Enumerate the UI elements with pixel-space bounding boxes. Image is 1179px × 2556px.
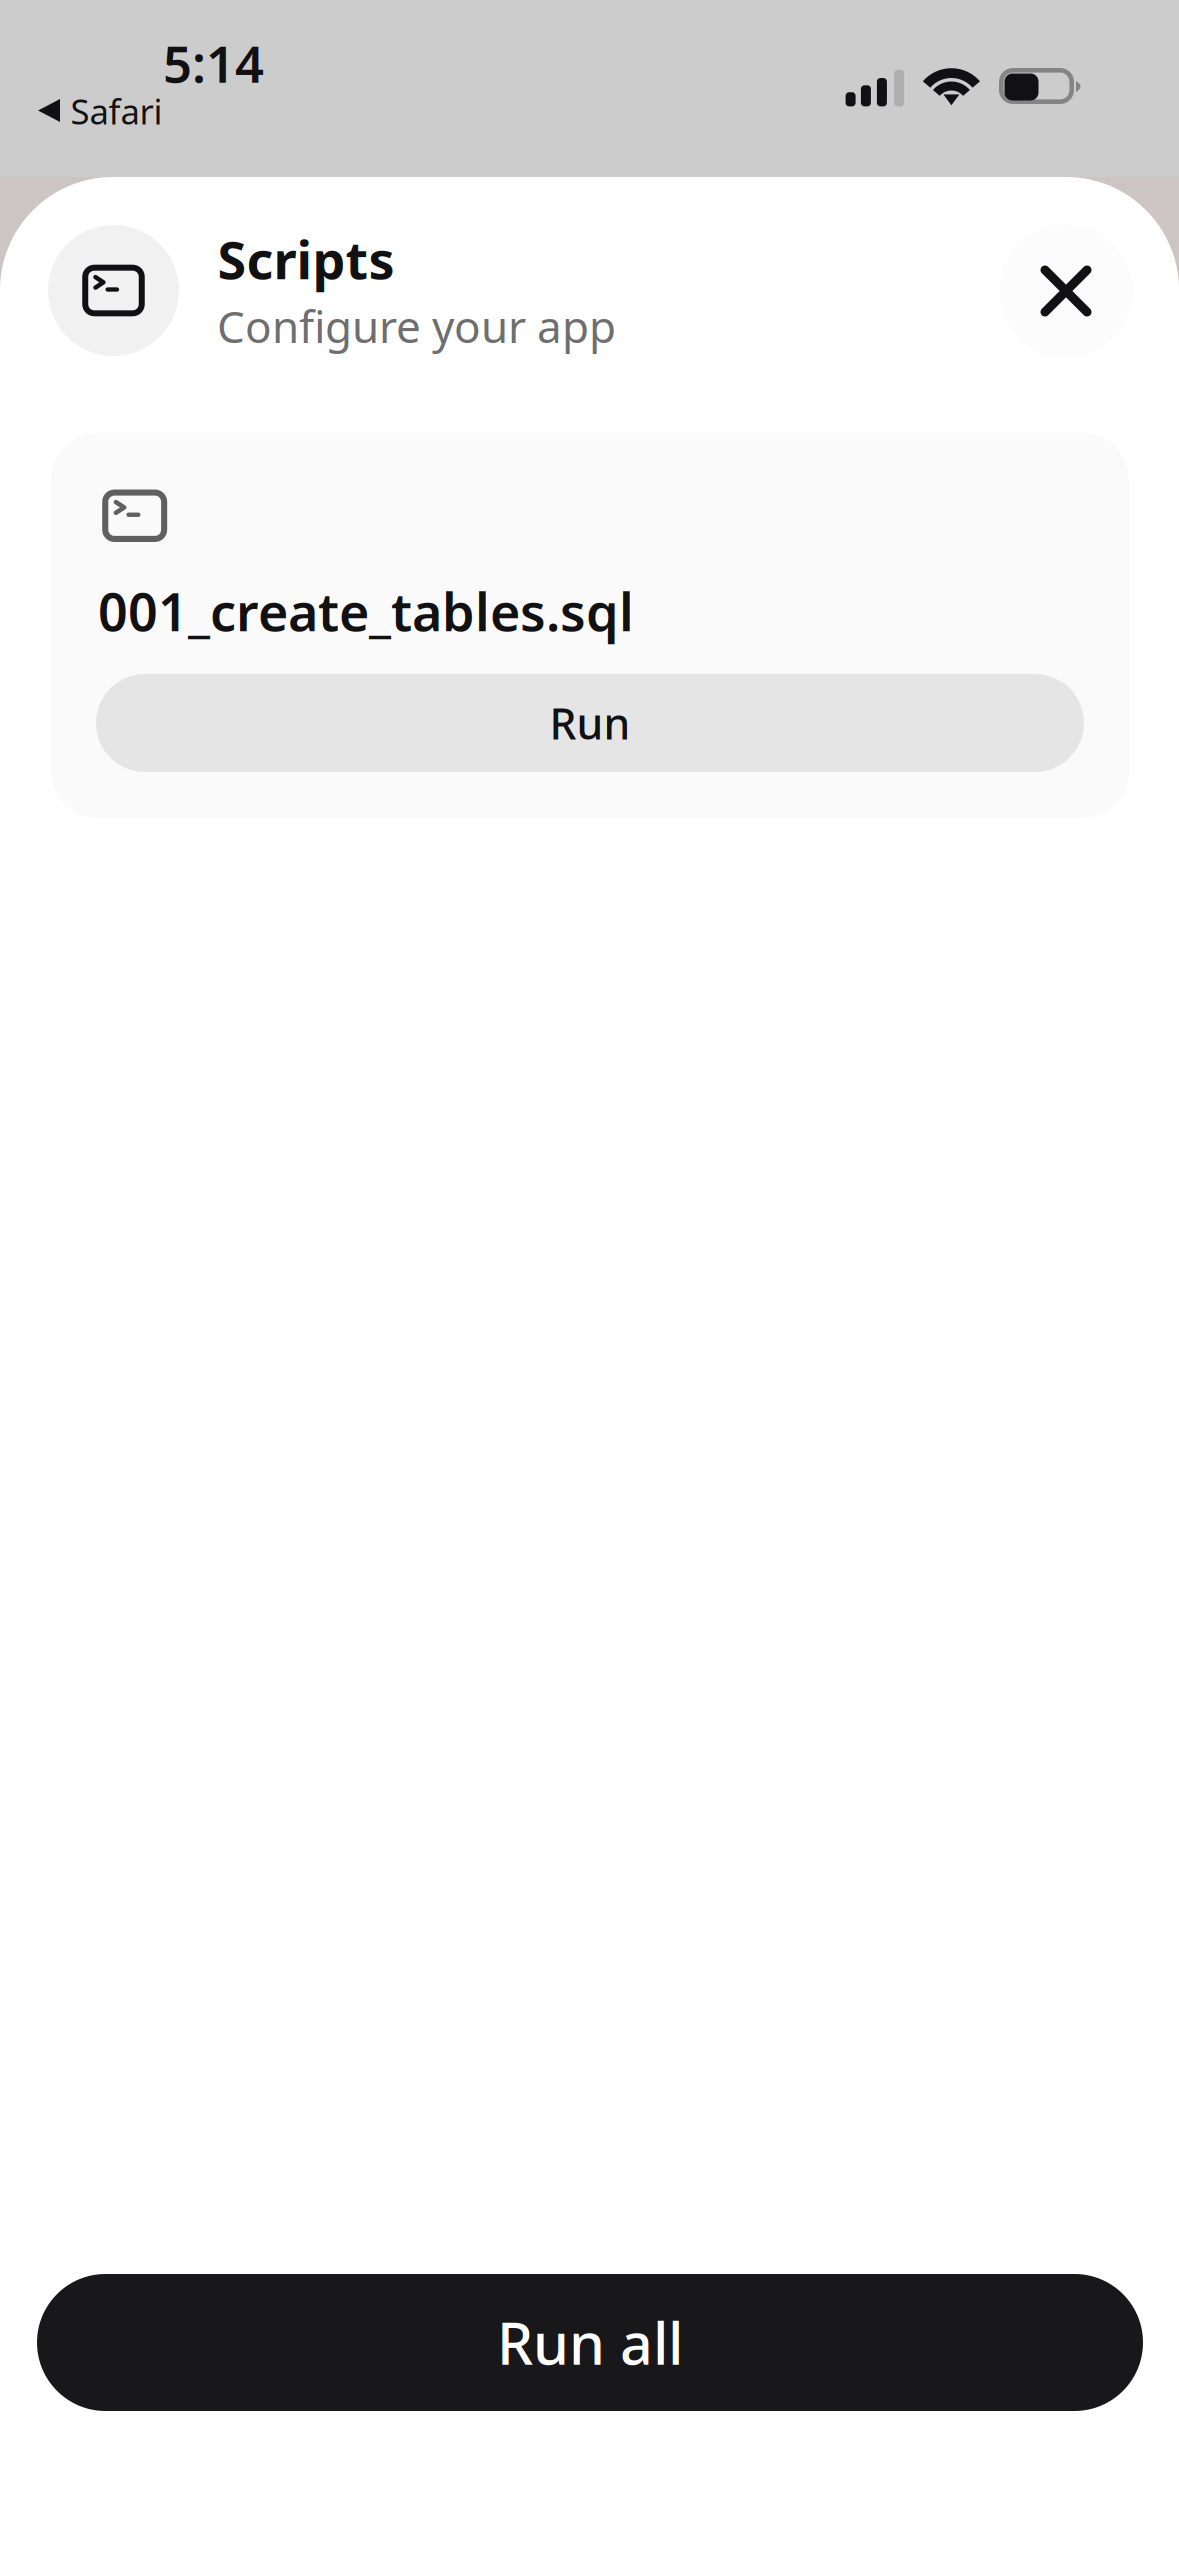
staticText: 001_create_tables.sql [98, 576, 634, 646]
button[interactable]: Safari [36, 93, 168, 129]
button[interactable]: Close [999, 224, 1133, 358]
staticText: Run all [497, 2304, 683, 2380]
staticText: Scripts [217, 224, 394, 294]
staticText: Configure your app [217, 297, 616, 355]
staticText: 5:14 [163, 29, 264, 97]
staticText: Safari [71, 88, 163, 134]
button[interactable]: Run [96, 674, 1084, 772]
button[interactable]: Run all [37, 2274, 1143, 2411]
staticText: Run [549, 695, 630, 751]
